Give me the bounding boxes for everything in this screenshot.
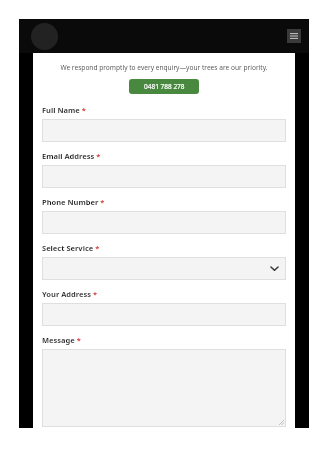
button[interactable] [42,211,286,234]
staticText: Select Service * [42,243,100,253]
button[interactable]: 0481 788 278 [129,79,199,94]
staticText: Full Name * [42,105,86,115]
staticText: 0481 788 278 [144,82,185,91]
staticText: Your Address * [42,289,98,299]
staticText: Phone Number * [42,197,105,207]
button[interactable] [42,303,286,326]
button[interactable] [42,119,286,142]
staticText: We respond promptly to every enquiry—you… [38,63,290,72]
staticText: Email Address * [42,151,101,161]
button[interactable] [42,349,286,427]
button[interactable]: Home logo [31,23,58,50]
staticText: Message * [42,335,81,345]
button[interactable] [42,165,286,188]
button[interactable]: Menu [287,29,301,43]
button[interactable] [42,257,286,280]
